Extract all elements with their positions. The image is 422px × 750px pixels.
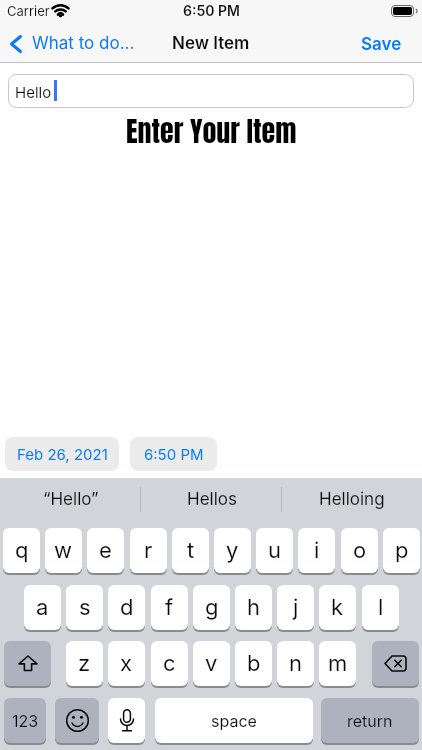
button[interactable]: v: [193, 641, 230, 686]
button[interactable]: n: [277, 641, 314, 686]
button[interactable]: [372, 641, 419, 686]
staticText: s: [79, 594, 91, 621]
staticText: t: [187, 537, 195, 564]
staticText: b: [247, 650, 261, 677]
staticText: return: [347, 711, 393, 730]
staticText: p: [395, 537, 409, 564]
button[interactable]: Save: [352, 30, 410, 58]
button[interactable]: m: [319, 641, 356, 686]
button[interactable]: c: [151, 641, 188, 686]
button[interactable]: e: [87, 528, 124, 573]
staticText: q: [15, 537, 29, 564]
button[interactable]: Helloing: [282, 478, 422, 520]
button[interactable]: x: [108, 641, 145, 686]
staticText: Enter Your Item: [126, 110, 297, 152]
staticText: Feb 26, 2021: [17, 445, 108, 463]
button[interactable]: f: [151, 585, 188, 630]
button[interactable]: i: [298, 528, 335, 573]
staticText: f: [165, 594, 174, 621]
button[interactable]: w: [45, 528, 82, 573]
staticText: “Hello”: [43, 489, 99, 510]
staticText: Hello: [15, 83, 52, 101]
staticText: a: [36, 594, 49, 621]
staticText: Carrier: [7, 3, 50, 19]
button[interactable]: d: [108, 585, 145, 630]
staticText: m: [328, 650, 348, 677]
staticText: n: [289, 650, 302, 677]
button[interactable]: [108, 698, 145, 743]
staticText: g: [205, 594, 219, 621]
button[interactable]: q: [3, 528, 40, 573]
button[interactable]: What to do...: [6, 30, 142, 58]
staticText: d: [120, 594, 134, 621]
button[interactable]: r: [130, 528, 167, 573]
staticText: space: [211, 711, 257, 730]
staticText: o: [353, 537, 367, 564]
staticText: w: [54, 537, 73, 564]
button[interactable]: [55, 698, 99, 743]
button[interactable]: 123: [4, 698, 46, 743]
button[interactable]: s: [66, 585, 103, 630]
button[interactable]: [4, 641, 51, 686]
button[interactable]: z: [66, 641, 103, 686]
staticText: What to do...: [32, 33, 135, 54]
button[interactable]: j: [277, 585, 314, 630]
staticText: e: [99, 537, 112, 564]
button[interactable]: g: [193, 585, 230, 630]
staticText: New Item: [172, 33, 250, 54]
staticText: z: [78, 650, 91, 677]
button[interactable]: return: [321, 698, 419, 743]
staticText: 123: [12, 711, 39, 730]
staticText: i: [314, 537, 320, 564]
button[interactable]: [8, 74, 414, 108]
staticText: u: [268, 537, 282, 564]
button[interactable]: 6:50 PM: [130, 437, 217, 471]
button[interactable]: “Hello”: [0, 478, 141, 520]
button[interactable]: t: [172, 528, 209, 573]
staticText: 6:50 PM: [144, 445, 204, 463]
staticText: y: [226, 537, 239, 564]
staticText: x: [120, 650, 133, 677]
button[interactable]: p: [383, 528, 420, 573]
staticText: v: [205, 650, 218, 677]
button[interactable]: Hellos: [141, 478, 282, 520]
staticText: 6:50 PM: [183, 2, 240, 19]
button[interactable]: l: [362, 585, 399, 630]
button[interactable]: b: [235, 641, 272, 686]
button[interactable]: y: [214, 528, 251, 573]
staticText: Helloing: [319, 489, 385, 510]
button[interactable]: Feb 26, 2021: [5, 437, 119, 471]
staticText: r: [144, 537, 153, 564]
button[interactable]: h: [235, 585, 272, 630]
button[interactable]: a: [24, 585, 61, 630]
staticText: Save: [361, 34, 402, 55]
button[interactable]: o: [341, 528, 378, 573]
button[interactable]: space: [155, 698, 313, 743]
staticText: l: [378, 594, 384, 621]
staticText: Hellos: [187, 489, 237, 510]
staticText: j: [293, 594, 299, 621]
button[interactable]: k: [319, 585, 356, 630]
staticText: c: [163, 650, 176, 677]
staticText: h: [247, 594, 261, 621]
button[interactable]: u: [256, 528, 293, 573]
staticText: k: [331, 594, 344, 621]
